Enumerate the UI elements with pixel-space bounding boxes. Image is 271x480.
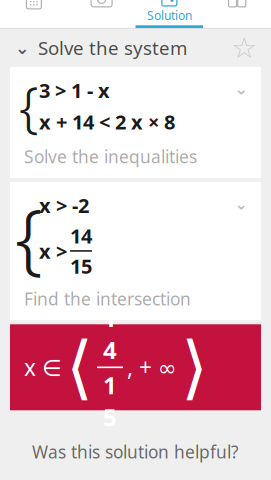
staticText: ⌄ xyxy=(234,80,247,98)
staticText: ⟩ xyxy=(181,328,208,407)
staticText: Find the intersection xyxy=(24,287,191,310)
staticText: ✓ xyxy=(168,0,180,6)
staticText: 15 xyxy=(103,369,117,433)
button[interactable]: Camera xyxy=(68,0,136,28)
staticText: ☆ xyxy=(231,31,257,64)
button[interactable]: Calculator xyxy=(0,0,68,28)
staticText: ⌄ xyxy=(234,195,247,213)
staticText: { xyxy=(15,184,43,287)
staticText: x + 14 < 2 x × 8 xyxy=(39,108,175,135)
staticText: Was this solution helpful? xyxy=(32,440,239,463)
staticText: 3 > 1 - x xyxy=(39,77,110,103)
button[interactable]: { xyxy=(10,182,261,320)
button[interactable]: Solution xyxy=(135,0,203,28)
staticText: x ∈ xyxy=(24,352,62,382)
staticText: 14 xyxy=(70,223,92,249)
button[interactable]: { xyxy=(10,67,261,178)
staticText: { xyxy=(19,70,39,142)
staticText: ⟨ xyxy=(66,328,93,407)
staticText: , + ∞ xyxy=(127,352,177,382)
staticText: ⌄ xyxy=(15,38,30,58)
staticText: Solve the inequalities xyxy=(24,145,197,168)
button[interactable]: Book xyxy=(203,0,271,28)
staticText: x > -2 xyxy=(39,192,89,219)
staticText: 15 xyxy=(70,253,92,279)
button[interactable]: ⌄ xyxy=(0,25,187,70)
staticText: Solution xyxy=(147,7,192,23)
button[interactable]: Favorite xyxy=(231,25,271,70)
staticText: 14 xyxy=(103,302,117,365)
staticText: Solve the system xyxy=(38,35,187,60)
staticText: x > xyxy=(39,238,67,264)
